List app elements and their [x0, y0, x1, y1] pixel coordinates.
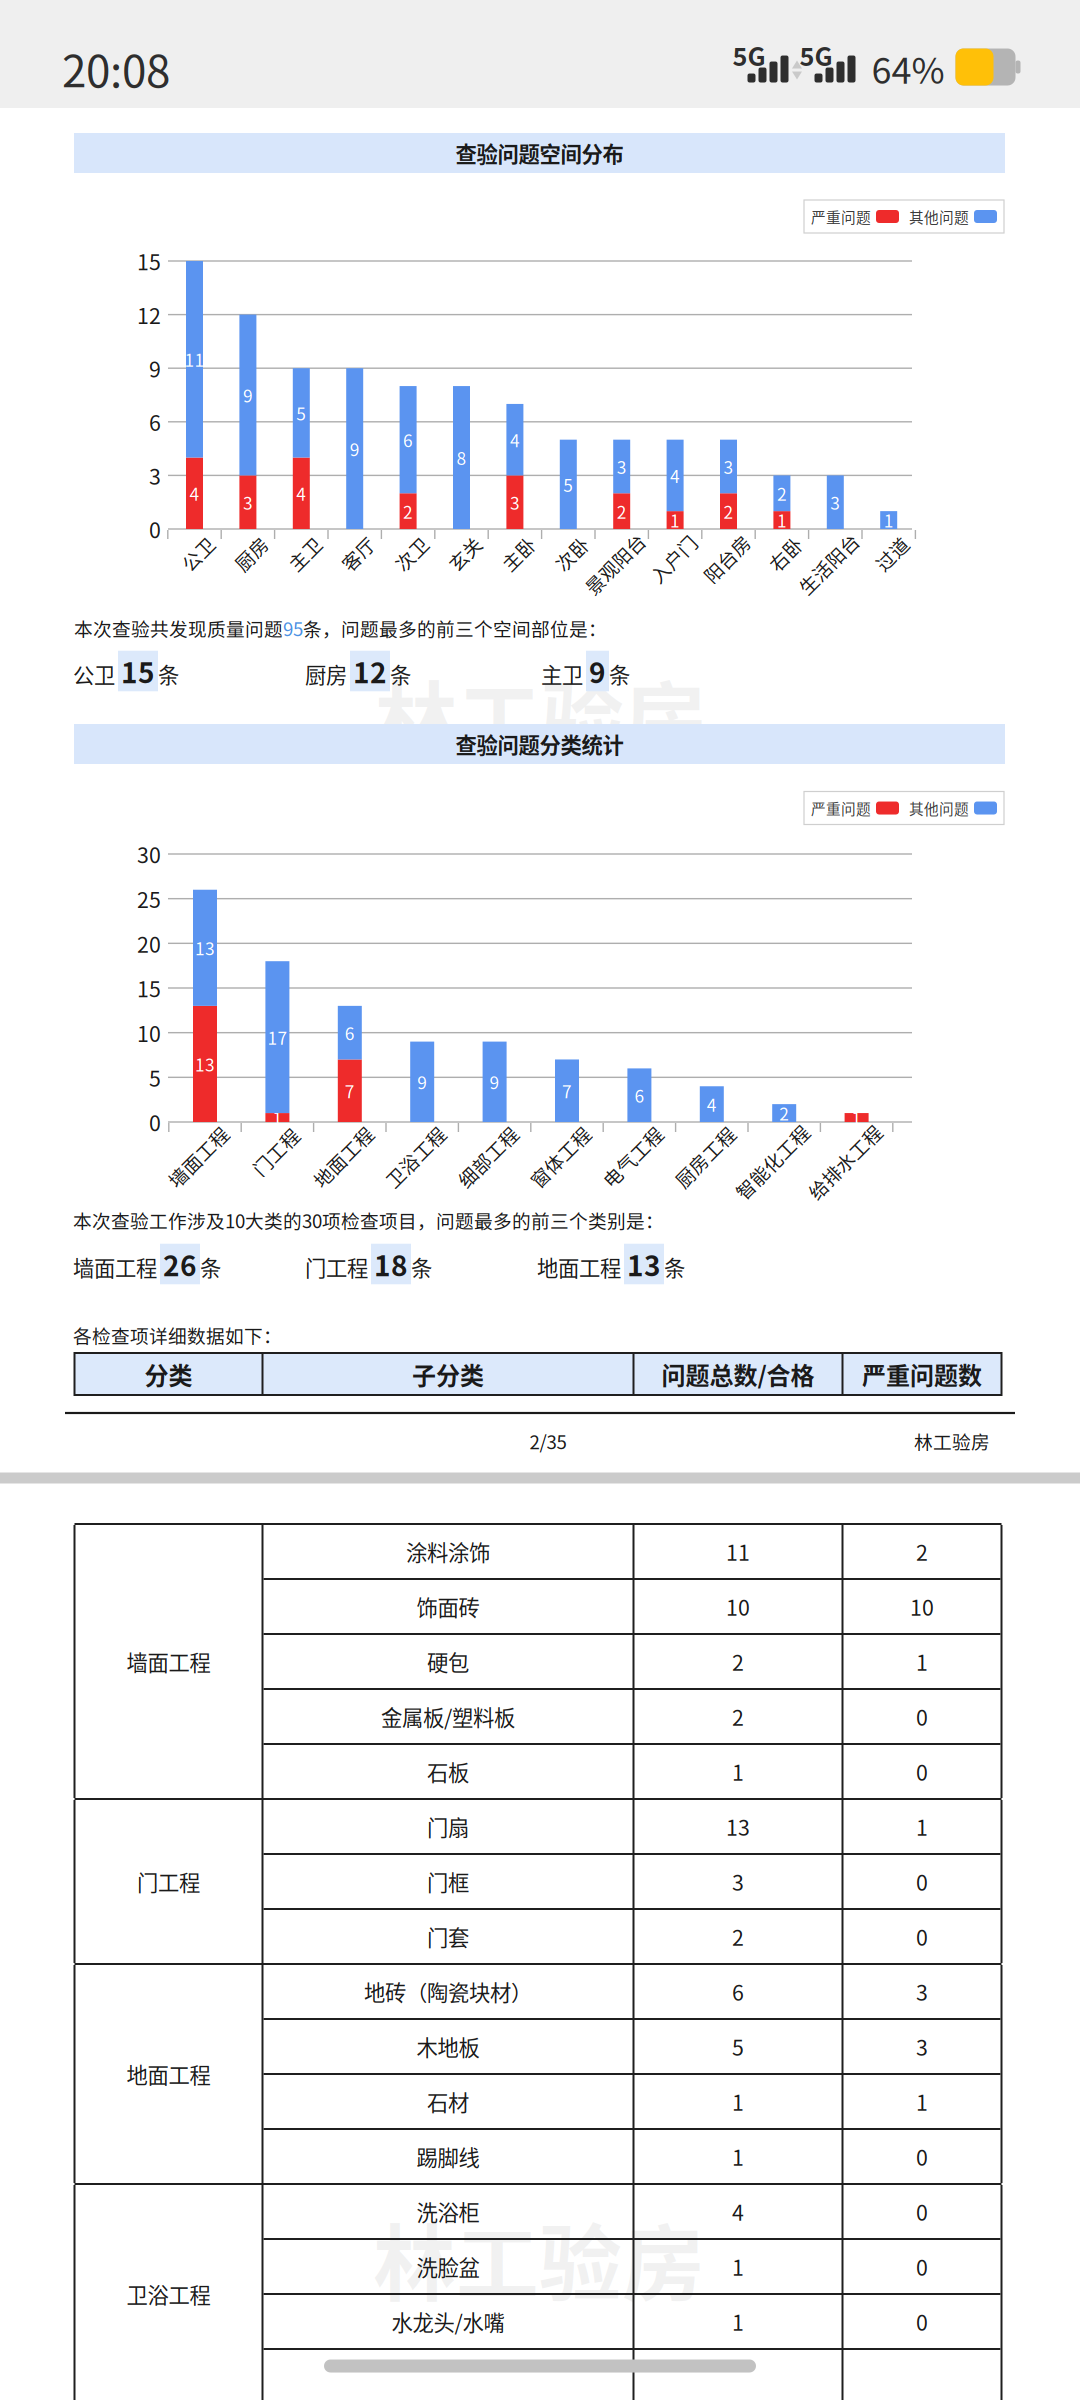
- staticText: 各检查项详细数据如下：: [73, 1321, 282, 1348]
- staticText: 1: [852, 1105, 862, 1130]
- staticText: 15: [121, 651, 155, 691]
- staticText: 石材: [427, 2086, 469, 2117]
- staticText: 5G: [799, 37, 832, 73]
- staticText: 地面工程: [126, 2059, 210, 2089]
- staticText: 9: [350, 436, 360, 461]
- staticText: 查验问题分类统计: [455, 729, 623, 759]
- staticText: 7: [562, 1078, 572, 1103]
- staticText: 1: [732, 1756, 744, 1787]
- staticText: 10: [910, 1591, 934, 1622]
- staticText: 0: [916, 1921, 928, 1952]
- staticText: 1: [732, 2306, 744, 2337]
- staticText: 1: [732, 2251, 744, 2282]
- staticText: 墙面工程: [126, 1646, 210, 1677]
- staticText: 本次查验工作涉及10大类的30项检查项目，问题最多的前三个类别是：: [73, 1206, 664, 1233]
- staticText: 窗体工程: [522, 1143, 598, 1170]
- staticText: 次卫: [392, 540, 430, 567]
- staticText: 18: [374, 1244, 408, 1284]
- staticText: 2: [779, 1100, 789, 1126]
- staticText: 5G: [732, 37, 765, 73]
- staticText: 条: [609, 658, 630, 689]
- staticText: 0: [916, 2306, 928, 2337]
- staticText: 20:08: [62, 36, 170, 100]
- staticText: 右卧: [766, 540, 804, 567]
- staticText: 3: [723, 454, 733, 479]
- staticText: 6: [634, 1083, 644, 1108]
- staticText: 6: [345, 1020, 355, 1045]
- staticText: 1: [916, 1811, 928, 1842]
- staticText: 木地板: [416, 2031, 479, 2062]
- staticText: 30: [137, 839, 161, 869]
- staticText: 门工程: [305, 1251, 368, 1282]
- staticText: 查验问题空间分布: [455, 138, 623, 168]
- staticText: 门工程: [247, 1138, 304, 1165]
- staticText: 主卧: [499, 540, 537, 567]
- staticText: 林工验房: [373, 2198, 705, 2318]
- staticText: 26: [163, 1244, 197, 1284]
- staticText: 石板: [427, 1756, 469, 1787]
- staticText: 1: [916, 1646, 928, 1677]
- staticText: 景观阳台: [577, 550, 653, 577]
- staticText: 2: [617, 499, 627, 524]
- staticText: 阳台房: [698, 545, 755, 572]
- staticText: 1: [884, 507, 894, 533]
- staticText: 2: [732, 1646, 744, 1677]
- staticText: 生活阳台: [790, 550, 866, 577]
- staticText: 13: [195, 935, 215, 960]
- staticText: 10: [137, 1017, 161, 1048]
- staticText: 17: [267, 1025, 287, 1050]
- staticText: 洗浴柜: [416, 2196, 479, 2227]
- staticText: 3: [243, 490, 253, 515]
- staticText: 条，问题最多的前三个空间部位是：: [303, 614, 607, 641]
- staticText: 2: [732, 1921, 744, 1952]
- staticText: 1: [777, 507, 787, 533]
- staticText: 9: [243, 382, 253, 408]
- staticText: 主卫: [541, 658, 583, 689]
- staticText: 次卧: [553, 540, 591, 567]
- staticText: 8: [456, 445, 466, 470]
- staticText: 5: [732, 2031, 744, 2062]
- staticText: 过道: [873, 540, 911, 567]
- staticText: 0: [916, 2251, 928, 2282]
- staticText: 0: [916, 1866, 928, 1897]
- staticText: 门扇: [427, 1811, 469, 1842]
- staticText: 玄关: [446, 540, 484, 567]
- staticText: 3: [916, 2031, 928, 2062]
- staticText: 严重问题数: [862, 1357, 982, 1391]
- staticText: 3: [617, 454, 627, 479]
- staticText: 0: [916, 2196, 928, 2227]
- staticText: 4: [670, 463, 680, 488]
- staticText: 条: [200, 1251, 221, 1282]
- staticText: 给排水工程: [797, 1148, 892, 1175]
- staticText: 2: [723, 499, 733, 524]
- staticText: 9: [417, 1069, 427, 1094]
- staticText: 1: [732, 2141, 744, 2172]
- staticText: 5: [296, 400, 306, 425]
- staticText: 0: [916, 2141, 928, 2172]
- staticText: 4: [510, 427, 520, 452]
- staticText: 13: [627, 1244, 661, 1284]
- staticText: 墙面工程: [160, 1143, 236, 1170]
- staticText: 2: [916, 1536, 928, 1567]
- staticText: 4: [296, 481, 306, 506]
- staticText: 1: [670, 507, 680, 533]
- staticText: 2: [732, 1701, 744, 1732]
- staticText: 0: [149, 1107, 161, 1137]
- staticText: 硬包: [427, 1646, 469, 1677]
- staticText: 95: [283, 614, 303, 641]
- staticText: 本次查验共发现质量问题: [74, 614, 283, 641]
- staticText: 9: [149, 353, 161, 384]
- staticText: 厨房工程: [667, 1143, 743, 1170]
- staticText: 公卫: [73, 658, 115, 689]
- staticText: 6: [149, 406, 161, 437]
- staticText: 2: [777, 481, 787, 506]
- staticText: 4: [707, 1092, 717, 1117]
- staticText: 2: [403, 499, 413, 524]
- staticText: 条: [390, 658, 411, 689]
- staticText: 0: [916, 1756, 928, 1787]
- staticText: 门工程: [137, 1866, 200, 1897]
- staticText: 3: [916, 1976, 928, 2007]
- staticText: 3: [732, 1866, 744, 1897]
- staticText: 主卫: [286, 540, 324, 567]
- staticText: 13: [726, 1811, 750, 1842]
